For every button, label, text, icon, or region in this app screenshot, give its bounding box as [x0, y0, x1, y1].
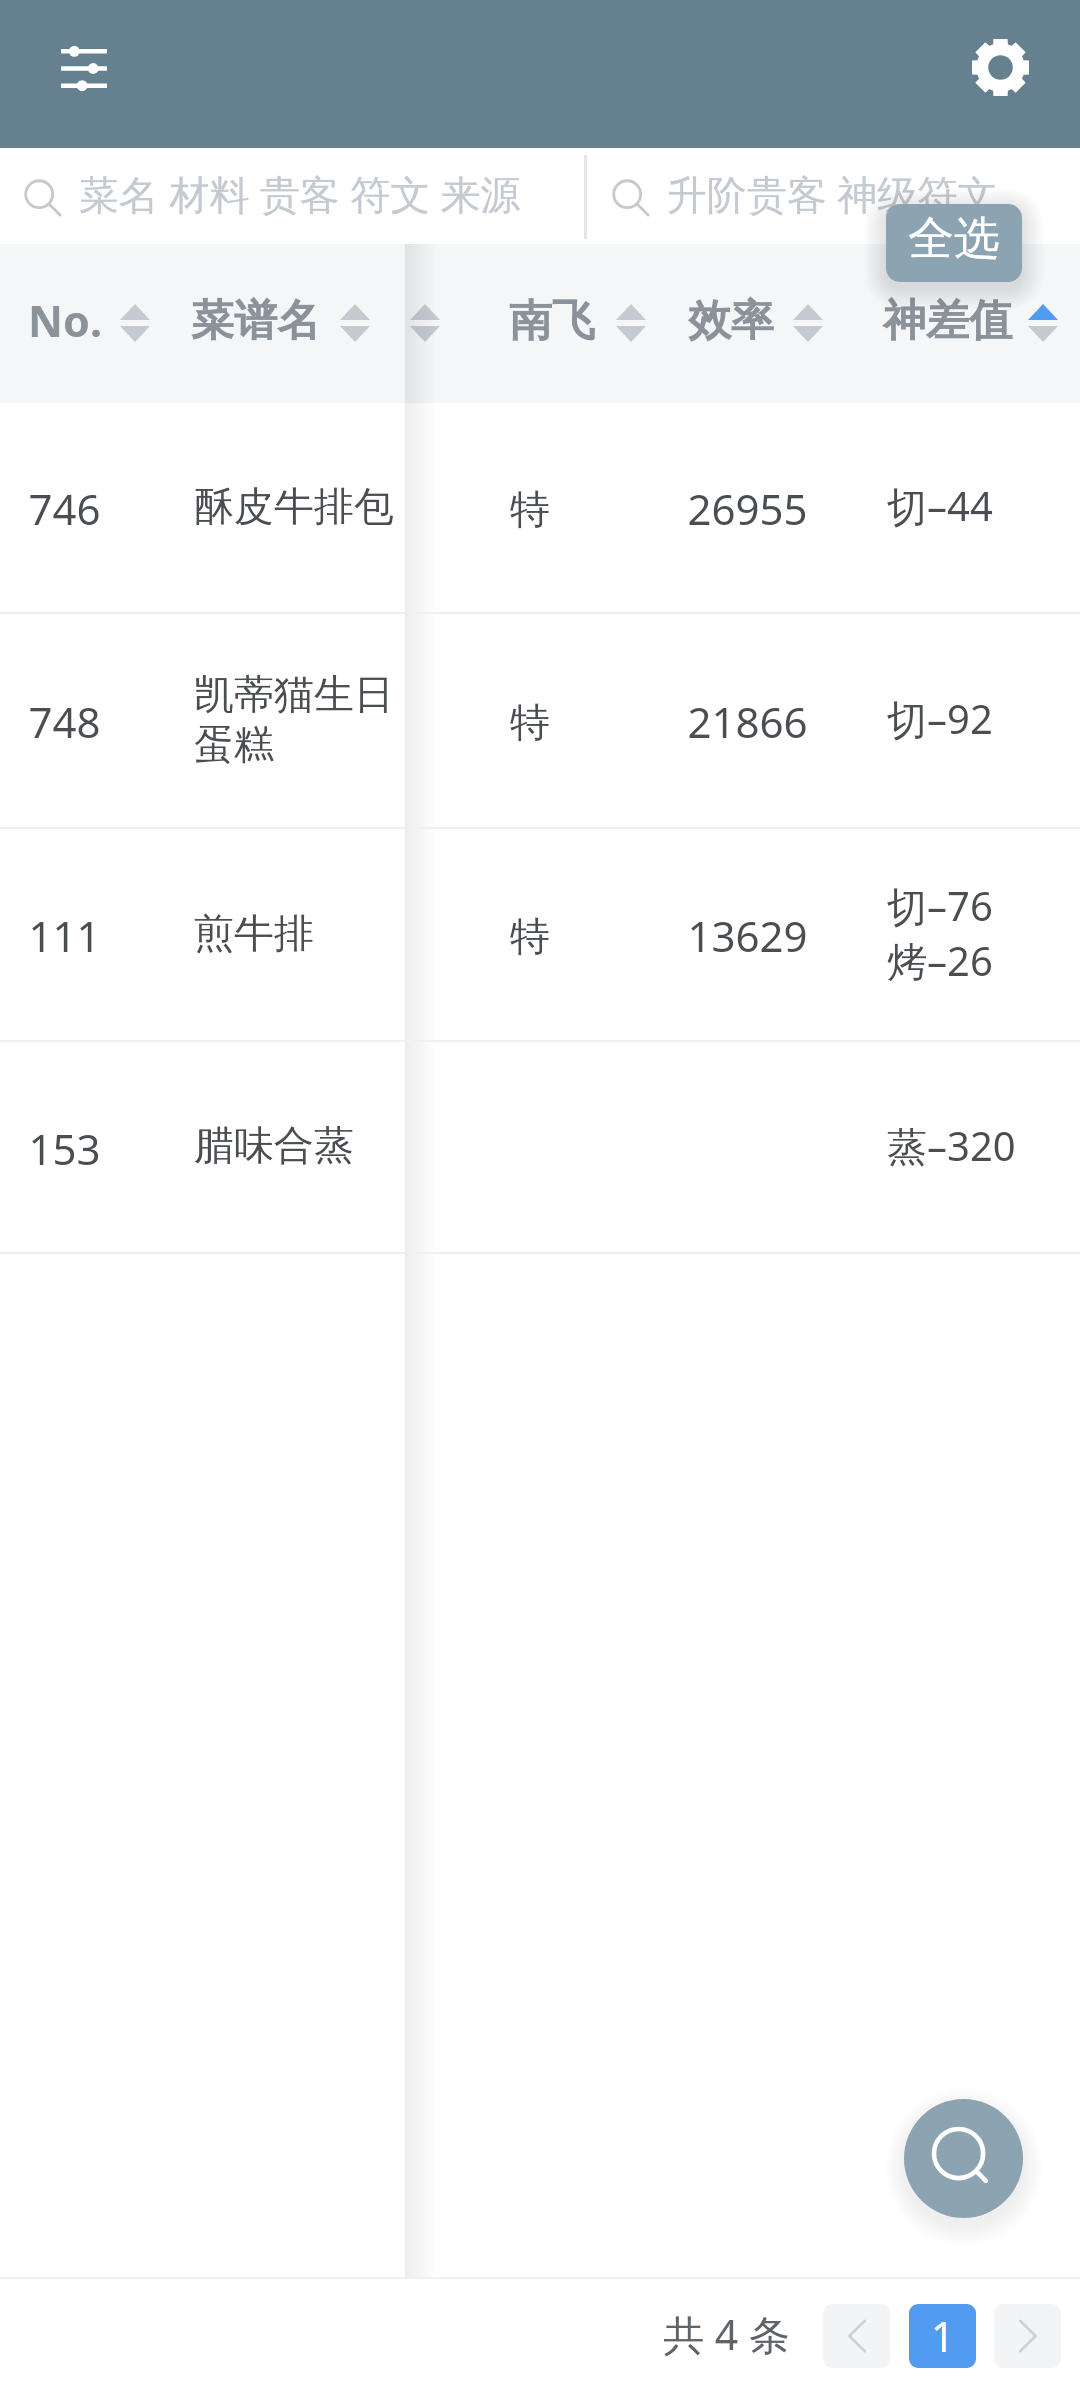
button[interactable]: 746 [0, 403, 1080, 614]
staticText: 南飞 [509, 294, 595, 348]
staticText: 特 [510, 911, 550, 961]
staticText: 菜名 材料 贵客 符文 来源 [79, 166, 521, 221]
button[interactable]: 菜谱名 [125, 241, 385, 400]
staticText: 21866 [687, 693, 808, 750]
button[interactable]: Search [904, 2099, 1023, 2218]
staticText: No. [28, 291, 102, 350]
staticText: 凯蒂猫生日 [194, 669, 394, 719]
staticText: 111 [28, 907, 101, 964]
button[interactable]: 效率 [601, 241, 861, 400]
staticText: 26955 [687, 480, 808, 537]
button[interactable]: 748 [0, 614, 1080, 829]
button[interactable]: Previous page [823, 2304, 890, 2368]
staticText: 748 [28, 693, 101, 750]
staticText: 特 [510, 697, 550, 747]
button[interactable]: 全选 [886, 204, 1022, 282]
staticText: 1 [931, 2308, 955, 2364]
staticText: 746 [28, 480, 101, 537]
button[interactable]: 神差值 [817, 241, 1077, 400]
staticText: 腊味合蒸 [194, 1120, 354, 1170]
button[interactable] [0, 148, 584, 244]
button[interactable]: 南飞 [422, 241, 682, 400]
button[interactable] [588, 148, 1080, 244]
staticText: 全选 [908, 210, 1000, 268]
button[interactable]: 1 [909, 2304, 976, 2368]
staticText: 煎牛排 [194, 908, 314, 958]
staticText: 蒸–320 [887, 1118, 1016, 1173]
staticText: 切–76 [887, 878, 993, 933]
button[interactable]: 111 [0, 829, 1080, 1042]
staticText: 升阶贵客 神级符文 [667, 166, 998, 221]
button[interactable]: 153 [0, 1042, 1080, 1254]
staticText: 153 [28, 1120, 101, 1177]
button[interactable]: Filter [38, 22, 130, 114]
staticText: 特 [510, 484, 550, 534]
staticText: 共 4 条 [663, 2306, 790, 2362]
staticText: 切–44 [887, 478, 993, 533]
button[interactable]: Settings [954, 21, 1046, 113]
staticText: 效率 [688, 294, 774, 348]
staticText: 酥皮牛排包 [194, 481, 394, 531]
staticText: 切–92 [887, 691, 993, 746]
staticText: 烤–26 [887, 933, 993, 988]
staticText: 蛋糕 [194, 719, 274, 769]
button[interactable]: No. [0, 241, 195, 400]
staticText: 菜谱名 [191, 294, 320, 348]
button[interactable]: Next page [994, 2304, 1061, 2368]
staticText: 神差值 [883, 294, 1012, 348]
staticText: 13629 [687, 907, 808, 964]
